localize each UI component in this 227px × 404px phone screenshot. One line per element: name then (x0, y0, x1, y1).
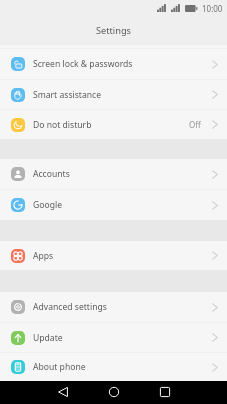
staticText: Off (189, 119, 201, 130)
button[interactable]: About phone (0, 353, 227, 381)
staticText: Smart assistance (33, 89, 102, 101)
staticText: Screen lock & passwords (33, 58, 133, 70)
button[interactable]: Back (37, 381, 88, 404)
staticText: Accounts (33, 168, 70, 180)
button[interactable]: Smart assistance (0, 80, 227, 109)
staticText: Do not disturb (33, 119, 92, 131)
button[interactable]: Screen lock & passwords (0, 49, 227, 79)
button[interactable]: Google (0, 190, 227, 220)
staticText: Settings (96, 24, 131, 37)
button[interactable]: Accounts (0, 159, 227, 189)
button[interactable]: Apps (0, 241, 227, 270)
staticText: Update (33, 332, 63, 344)
button[interactable]: Home (88, 381, 139, 404)
button[interactable]: Advanced settings (0, 292, 227, 322)
staticText: Apps (33, 250, 54, 262)
button[interactable]: Do not disturb (0, 110, 227, 139)
staticText: Advanced settings (33, 301, 107, 313)
staticText: About phone (33, 361, 86, 373)
button[interactable]: Update (0, 323, 227, 352)
button[interactable]: Recents (139, 381, 190, 404)
staticText: Google (33, 199, 63, 211)
staticText: 10:00 (202, 3, 223, 12)
